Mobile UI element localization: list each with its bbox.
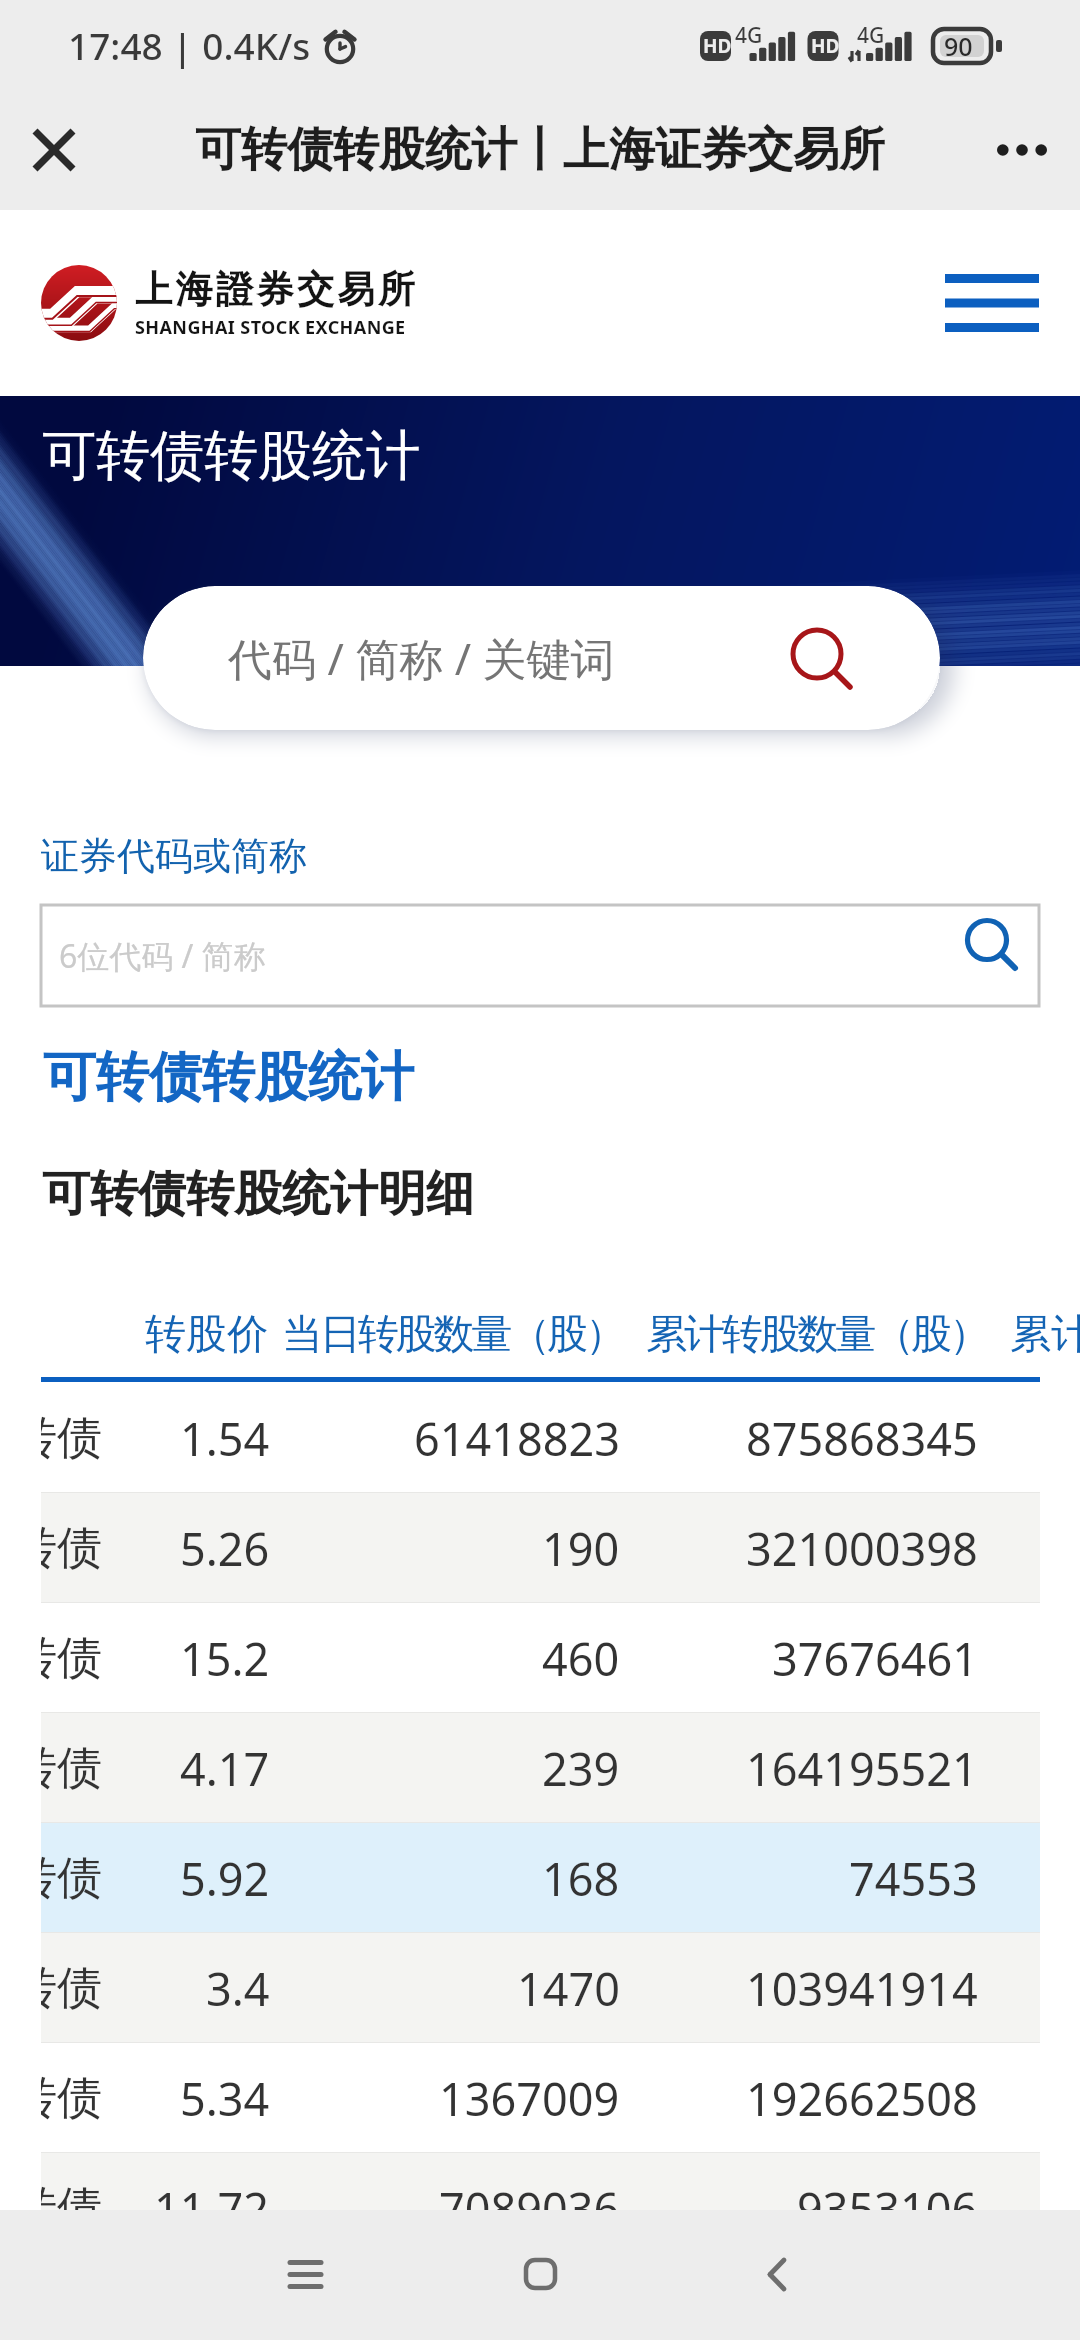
- staticText: 190: [542, 1518, 620, 1579]
- staticText: 321000398: [746, 1518, 978, 1579]
- staticText: 转债: [41, 1850, 102, 1907]
- staticText: 当日转股数量（股）: [282, 1309, 624, 1361]
- staticText: 7089036: [439, 2178, 620, 2239]
- staticText: 74553: [849, 1848, 978, 1909]
- staticText: 5.92: [180, 1848, 270, 1909]
- button[interactable]: Back: [717, 2214, 837, 2334]
- button[interactable]: More options: [984, 112, 1060, 188]
- staticText: SHANGHAI STOCK EXCHANGE: [135, 315, 406, 340]
- button[interactable]: Close: [16, 112, 92, 188]
- staticText: 15.2: [180, 1628, 270, 1689]
- staticText: 证券代码或简称: [41, 832, 307, 880]
- button[interactable]: 转债: [41, 1603, 1040, 1713]
- button[interactable]: Recent apps: [245, 2214, 365, 2334]
- staticText: 1367009: [439, 2068, 620, 2129]
- staticText: 37676461: [772, 1628, 978, 1689]
- staticText: 5.34: [180, 2068, 270, 2129]
- staticText: 192662508: [746, 2068, 978, 2129]
- button[interactable]: 转债: [41, 2043, 1040, 2153]
- staticText: 转债: [41, 1960, 102, 2017]
- button[interactable]: 转债: [41, 1713, 1040, 1823]
- staticText: 90: [944, 29, 973, 63]
- staticText: 6位代码 / 简称: [59, 934, 266, 978]
- staticText: 1.54: [180, 1408, 270, 1469]
- staticText: 5.26: [180, 1518, 270, 1579]
- button[interactable]: 转债: [41, 1823, 1040, 1933]
- staticText: 可转债转股统计: [42, 422, 420, 490]
- staticText: 转债: [41, 1740, 102, 1797]
- staticText: HD: [811, 33, 840, 59]
- staticText: 转股价: [145, 1309, 268, 1361]
- staticText: 转债: [41, 1410, 102, 1467]
- staticText: 103941914: [746, 1958, 978, 2019]
- staticText: HD: [703, 33, 732, 59]
- button[interactable]: 6位代码 / 简称: [41, 905, 1039, 1006]
- button[interactable]: 转债: [41, 1383, 1040, 1493]
- staticText: 代码 / 简称 / 关键词: [228, 628, 615, 688]
- staticText: 可转债转股统计明细: [42, 1164, 474, 1224]
- staticText: 可转债转股统计丨上海证券交易所: [195, 121, 885, 179]
- staticText: 上海證券交易所: [135, 266, 419, 313]
- staticText: 转债: [41, 1520, 102, 1577]
- button[interactable]: 转债: [41, 1933, 1040, 2043]
- staticText: 168: [542, 1848, 620, 1909]
- staticText: 3.4: [206, 1958, 270, 2019]
- staticText: 61418823: [414, 1408, 620, 1469]
- staticText: 转债: [41, 1630, 102, 1687]
- staticText: 9353106: [797, 2178, 978, 2239]
- staticText: 875868345: [746, 1408, 978, 1469]
- button[interactable]: Menu: [945, 263, 1039, 343]
- staticText: 可转债转股统计: [43, 1044, 414, 1111]
- staticText: 转债: [41, 2180, 102, 2237]
- staticText: 4G: [735, 21, 763, 50]
- staticText: 4G: [857, 21, 885, 50]
- staticText: 累计: [1010, 1309, 1080, 1361]
- button[interactable]: Home: [480, 2214, 600, 2334]
- button[interactable]: 转债: [41, 1493, 1040, 1603]
- staticText: 1470: [517, 1958, 620, 2019]
- staticText: 4.17: [180, 1738, 270, 1799]
- staticText: 460: [542, 1628, 620, 1689]
- staticText: 17:48 | 0.4K/s: [68, 20, 311, 70]
- button[interactable]: 代码 / 简称 / 关键词: [143, 586, 940, 730]
- staticText: 转债: [41, 2070, 102, 2127]
- button[interactable]: 转债: [41, 2153, 1040, 2263]
- staticText: 11.72: [154, 2178, 270, 2239]
- staticText: 239: [542, 1738, 620, 1799]
- staticText: 164195521: [746, 1738, 978, 1799]
- staticText: 累计转股数量（股）: [646, 1309, 988, 1361]
